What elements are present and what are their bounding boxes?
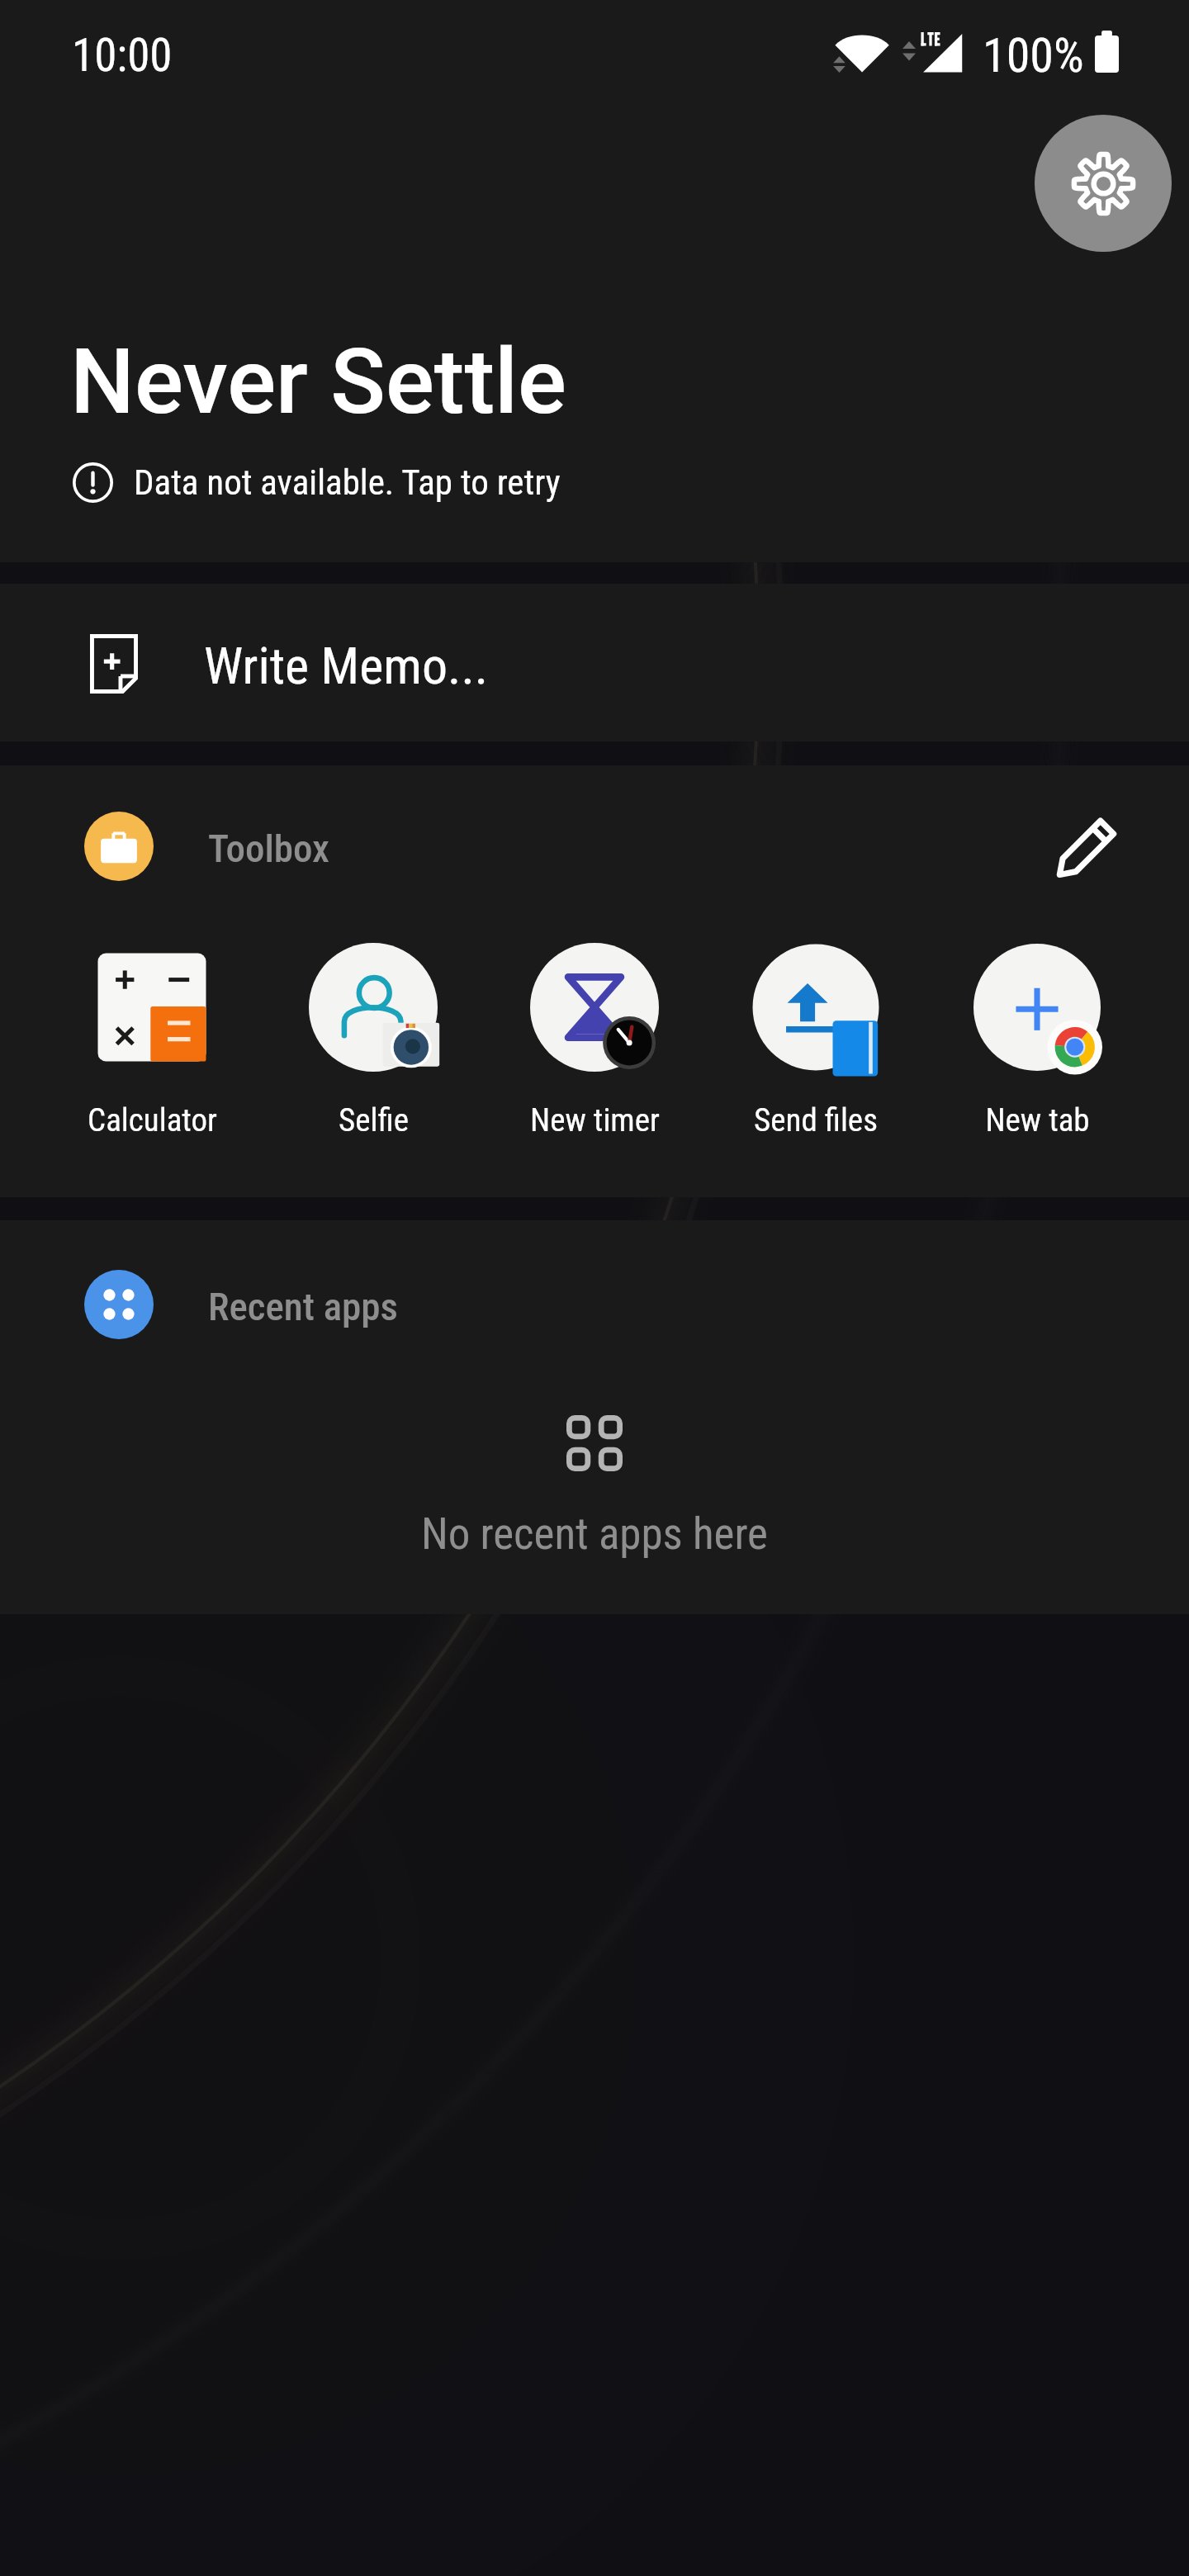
button[interactable]: Data not available. Tap to retry (73, 458, 561, 506)
staticText: New timer (530, 1101, 660, 1139)
staticText: New tab (985, 1101, 1090, 1139)
staticText: No recent apps here (421, 1508, 768, 1560)
staticText: Never Settle (70, 329, 567, 435)
button[interactable]: New tab (926, 942, 1148, 1139)
staticText: Send files (754, 1101, 878, 1139)
staticText: Write Memo... (204, 636, 489, 696)
staticText: Toolbox (208, 826, 329, 871)
staticText: Data not available. Tap to retry (134, 462, 561, 503)
button[interactable]: Write Memo... (0, 584, 1189, 741)
staticText: 100% (983, 27, 1084, 83)
button[interactable]: Send files (705, 942, 926, 1139)
staticText: 10:00 (72, 29, 173, 82)
staticText: Recent apps (208, 1284, 398, 1329)
button[interactable]: Calculator (41, 942, 263, 1139)
staticText: Calculator (88, 1101, 217, 1139)
button[interactable]: Selfie (263, 942, 484, 1139)
button[interactable]: Edit toolbox (1034, 794, 1139, 900)
staticText: Selfie (339, 1101, 409, 1139)
button[interactable]: New timer (484, 942, 705, 1139)
button[interactable]: Settings (1035, 115, 1172, 252)
